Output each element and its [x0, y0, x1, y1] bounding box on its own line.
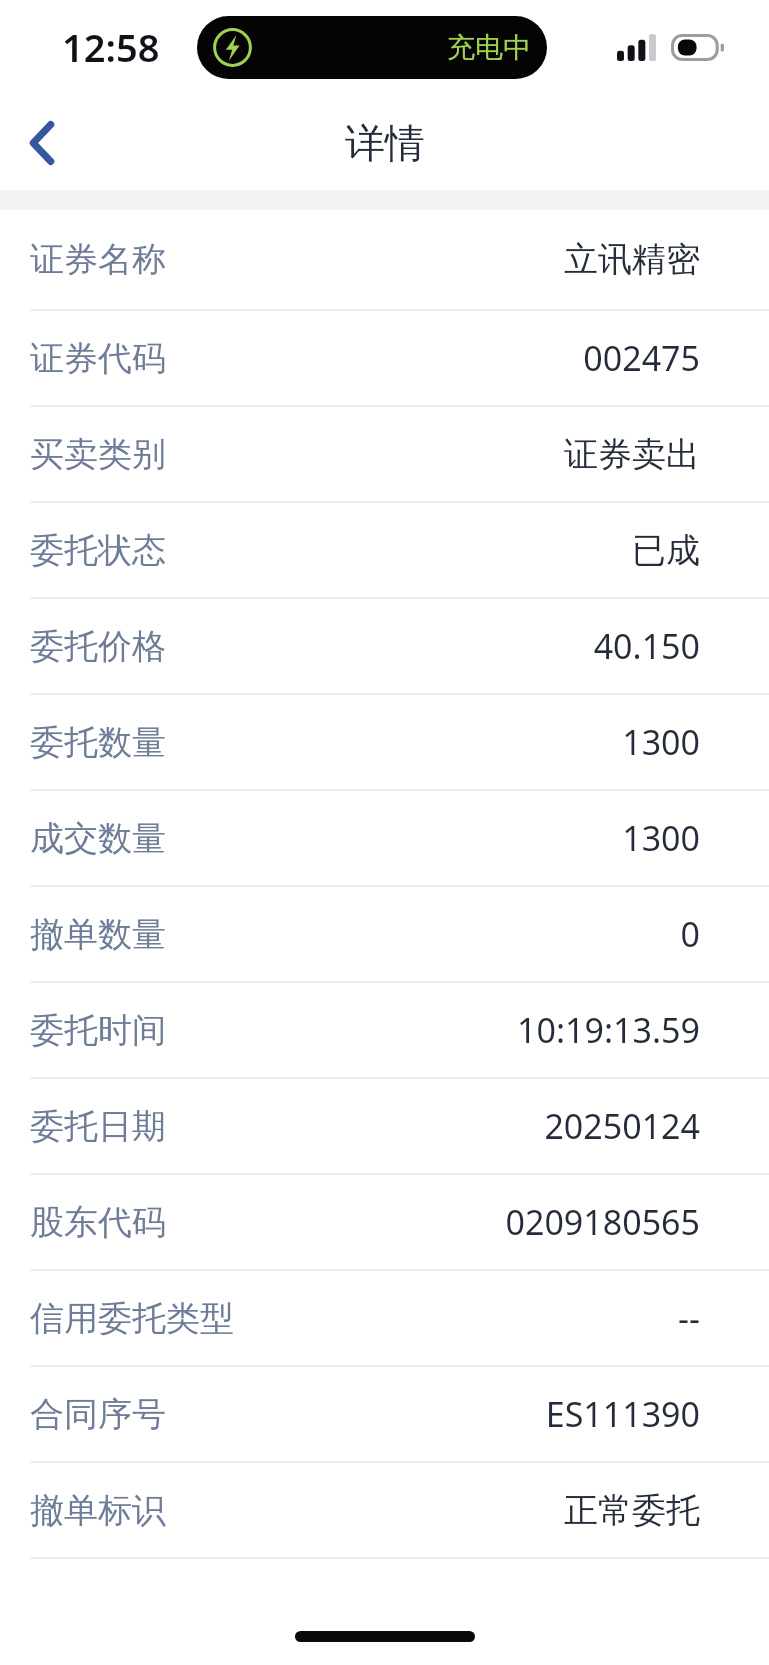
button[interactable]: 委托价格	[0, 599, 769, 693]
button[interactable]: 合同序号	[0, 1367, 769, 1461]
staticText: 0	[680, 911, 700, 957]
staticText: 10:19:13.59	[517, 1007, 700, 1053]
staticText: 12:58	[62, 21, 160, 73]
button[interactable]: 撤单数量	[0, 887, 769, 981]
staticText: 买卖类别	[30, 433, 166, 476]
staticText: ES111390	[545, 1391, 700, 1437]
staticText: --	[678, 1295, 700, 1341]
staticText: 20250124	[544, 1103, 700, 1149]
staticText: 40.150	[593, 623, 700, 669]
staticText: 信用委托类型	[30, 1297, 234, 1340]
staticText: 证券代码	[30, 337, 166, 380]
staticText: 委托状态	[30, 529, 166, 572]
staticText: 撤单数量	[30, 913, 166, 956]
staticText: 002475	[583, 335, 700, 381]
button[interactable]: 股东代码	[0, 1175, 769, 1269]
staticText: 1300	[622, 815, 700, 861]
staticText: 证券卖出	[564, 433, 700, 476]
staticText: 委托时间	[30, 1009, 166, 1052]
button[interactable]: 信用委托类型	[0, 1271, 769, 1365]
staticText: 股东代码	[30, 1201, 166, 1244]
button[interactable]: 证券代码	[0, 311, 769, 405]
button[interactable]: 委托状态	[0, 503, 769, 597]
staticText: 立讯精密	[564, 238, 700, 281]
staticText: 委托日期	[30, 1105, 166, 1148]
button[interactable]: 委托数量	[0, 695, 769, 789]
button[interactable]: 撤单标识	[0, 1463, 769, 1557]
staticText: 成交数量	[30, 817, 166, 860]
staticText: 委托价格	[30, 625, 166, 668]
staticText: 正常委托	[564, 1489, 700, 1532]
button[interactable]: 委托时间	[0, 983, 769, 1077]
button[interactable]: 证券名称	[0, 210, 769, 309]
button[interactable]: 买卖类别	[0, 407, 769, 501]
staticText: 充电中	[447, 30, 531, 65]
button[interactable]: Back	[6, 107, 78, 179]
staticText: 已成	[632, 529, 700, 572]
staticText: 合同序号	[30, 1393, 166, 1436]
staticText: 0209180565	[505, 1199, 700, 1245]
staticText: 撤单标识	[30, 1489, 166, 1532]
button[interactable]: 成交数量	[0, 791, 769, 885]
staticText: 证券名称	[30, 238, 166, 281]
staticText: 委托数量	[30, 721, 166, 764]
button[interactable]: 委托日期	[0, 1079, 769, 1173]
staticText: 详情	[345, 118, 425, 168]
staticText: 1300	[622, 719, 700, 765]
